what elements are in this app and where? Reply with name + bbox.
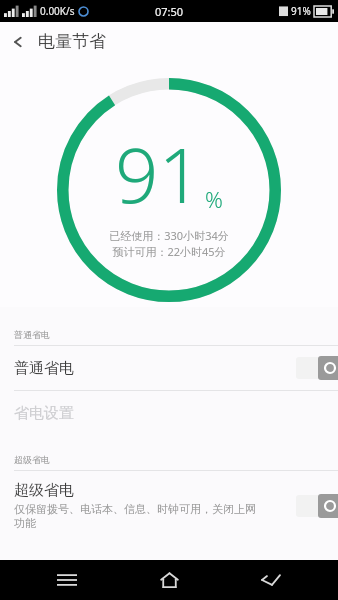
button[interactable]: 超级省电 (0, 471, 338, 540)
staticText: 普通省电 (14, 329, 50, 340)
staticText: 省电设置 (14, 404, 74, 423)
button[interactable]: Toggle (296, 494, 338, 518)
staticText: % (205, 184, 223, 214)
button[interactable]: 普通省电 (0, 346, 338, 390)
staticText: 电量节省 (38, 31, 106, 52)
staticText: 07:50 (155, 4, 184, 19)
staticText: 预计可用：22小时45分 (112, 244, 226, 259)
other: Back (12, 35, 26, 49)
button[interactable]: 省电设置 (0, 391, 338, 436)
button[interactable]: Toggle (296, 356, 338, 380)
button[interactable]: Back (236, 560, 306, 600)
staticText: 0.00K/s (40, 4, 75, 18)
staticText: 91 (115, 122, 202, 226)
staticText: 已经使用：330小时34分 (109, 228, 229, 243)
button[interactable]: Menu (32, 560, 102, 600)
button[interactable]: Back (0, 25, 118, 58)
staticText: 超级省电 (14, 481, 74, 500)
staticText: 超级省电 (14, 454, 50, 465)
button[interactable]: Home (134, 560, 204, 600)
staticText: 普通省电 (14, 359, 74, 378)
staticText: 91% (291, 4, 311, 18)
staticText: 仅保留拨号、电话本、信息、时钟可用，关闭上网 功能 (14, 502, 256, 530)
